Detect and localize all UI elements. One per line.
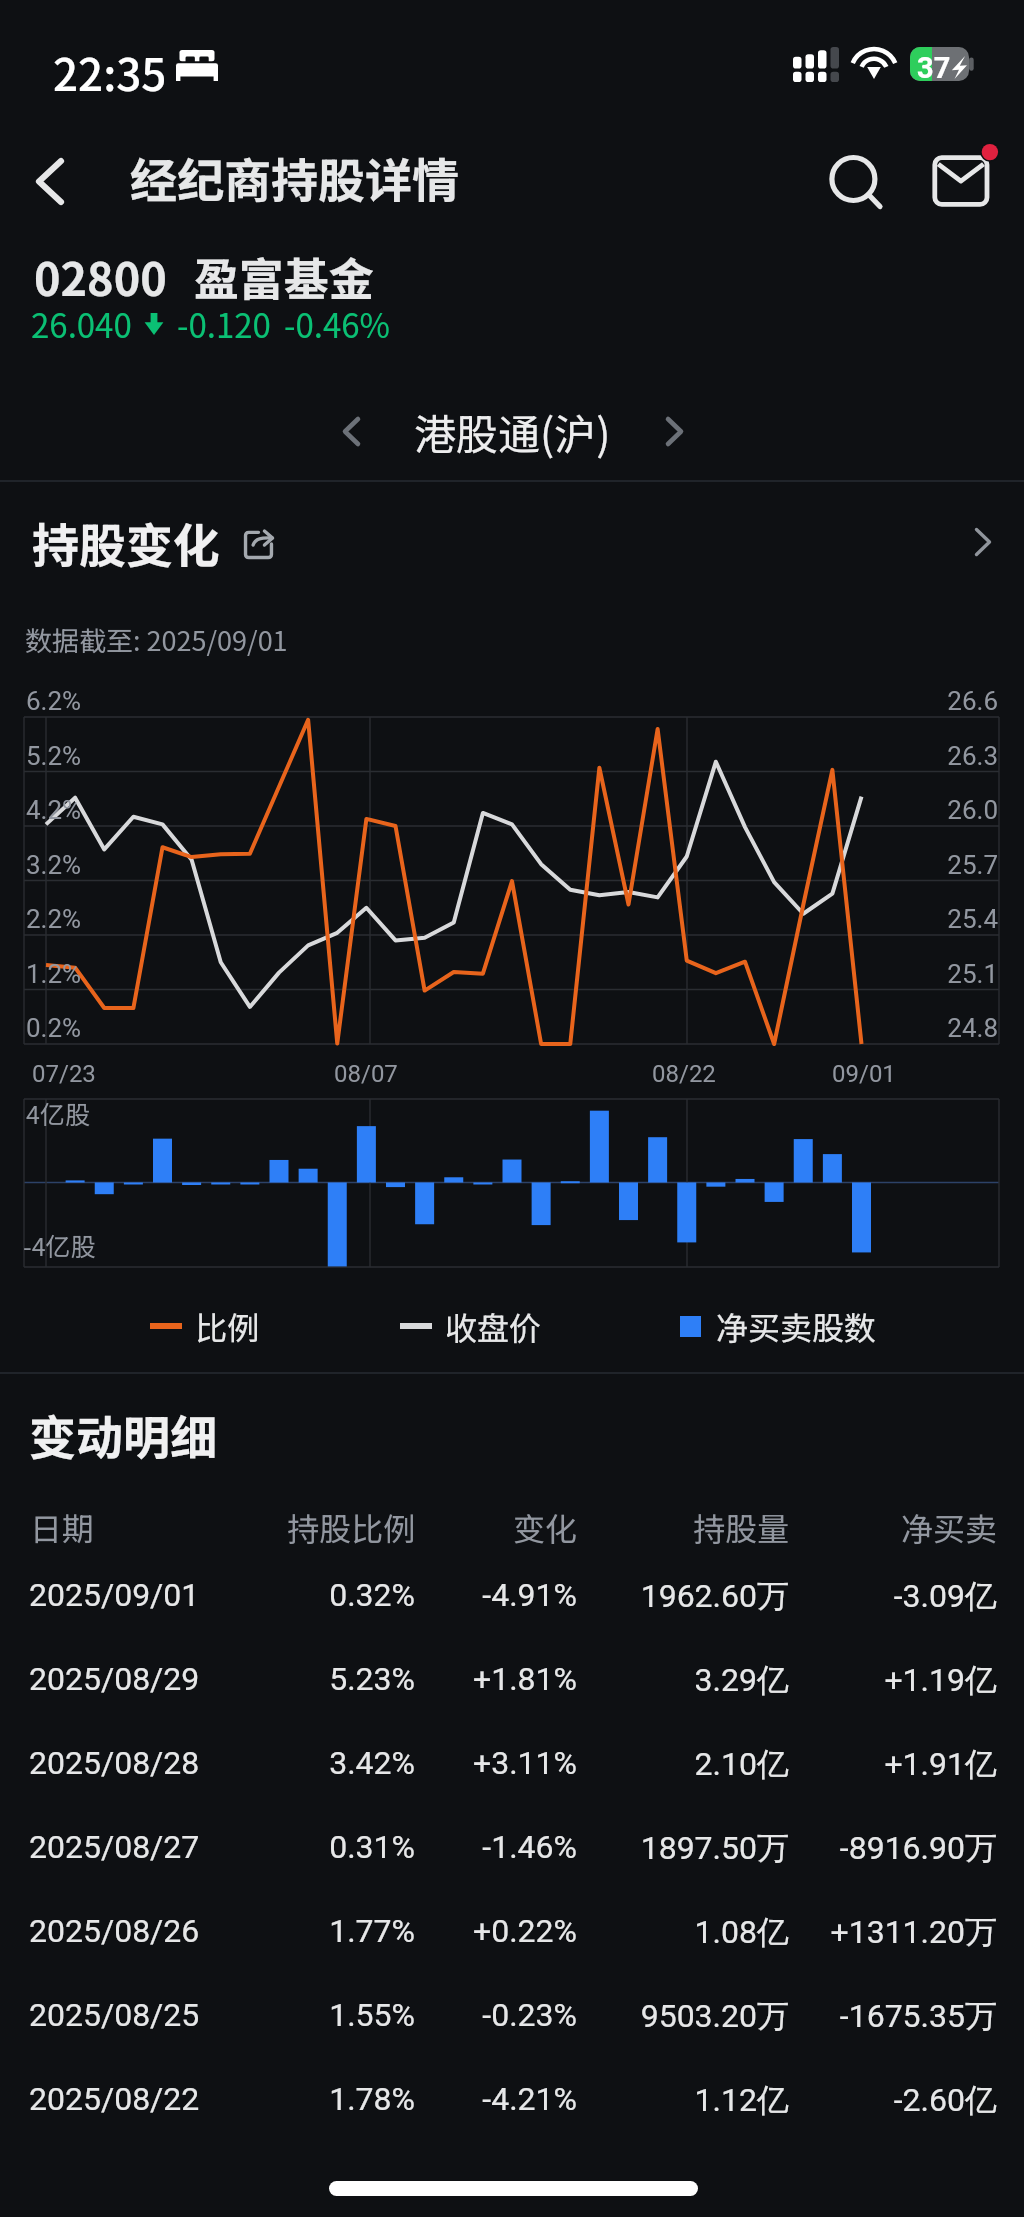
- staticText: -4.21%: [0, 2080, 577, 2118]
- staticText: 变动明细: [29, 1400, 217, 1468]
- staticText: 37: [917, 51, 951, 85]
- staticText: 净买卖股数: [716, 1303, 877, 1349]
- staticText: 2025/08/28: [29, 1744, 200, 1782]
- staticText: 2025/08/29: [29, 1660, 200, 1698]
- staticText: 2025/08/22: [29, 2080, 200, 2118]
- staticText: 2.10亿: [0, 1744, 789, 1784]
- staticText: 净买卖: [0, 1504, 997, 1550]
- staticText: -1675.35万: [0, 1996, 997, 2036]
- staticText: -1.46%: [0, 1828, 577, 1866]
- staticText: 持股量: [0, 1504, 789, 1550]
- staticText: 24.8: [880, 1013, 998, 1043]
- staticText: 07/23: [32, 1060, 96, 1088]
- button[interactable]: [0, 1890, 1024, 1974]
- button[interactable]: Previous market: [315, 395, 387, 467]
- button[interactable]: Back: [0, 131, 100, 231]
- staticText: 1.12亿: [0, 2080, 789, 2120]
- staticText: -2.60亿: [0, 2080, 997, 2120]
- staticText: 2.2%: [26, 904, 82, 934]
- button[interactable]: Search: [804, 130, 904, 230]
- staticText: 1.2%: [26, 959, 82, 989]
- staticText: 09/01: [832, 1060, 896, 1088]
- staticText: 经纪商持股详情: [130, 143, 459, 211]
- staticText: 5.23%: [0, 1660, 415, 1698]
- staticText: 3.2%: [26, 850, 82, 880]
- staticText: 6.2%: [26, 686, 82, 716]
- staticText: -4.91%: [0, 1576, 577, 1614]
- staticText: 0.2%: [26, 1013, 82, 1043]
- button[interactable]: [0, 1554, 1024, 1638]
- staticText: 盈富基金: [194, 244, 375, 309]
- staticText: 变化: [0, 1504, 577, 1550]
- staticText: -0.120: [177, 300, 271, 348]
- staticText: +1.81%: [0, 1660, 577, 1698]
- staticText: 4亿股: [26, 1095, 90, 1131]
- button[interactable]: Messages: [920, 130, 1020, 230]
- staticText: 收盘价: [445, 1303, 542, 1349]
- staticText: 持股比例: [0, 1504, 415, 1550]
- staticText: +3.11%: [0, 1744, 577, 1782]
- staticText: -4亿股: [23, 1227, 96, 1263]
- staticText: 08/07: [334, 1060, 398, 1088]
- staticText: +1311.20万: [0, 1912, 997, 1952]
- button[interactable]: [0, 1638, 1024, 1722]
- staticText: 1897.50万: [0, 1828, 789, 1868]
- staticText: 1.55%: [0, 1996, 415, 2034]
- button[interactable]: Next market: [638, 395, 710, 467]
- staticText: 08/22: [652, 1060, 716, 1088]
- staticText: 数据截至: 2025/09/01: [25, 620, 288, 659]
- button[interactable]: [0, 1722, 1024, 1806]
- button[interactable]: [0, 1806, 1024, 1890]
- staticText: 25.7: [880, 850, 998, 880]
- staticText: 日期: [30, 1504, 95, 1550]
- staticText: -8916.90万: [0, 1828, 997, 1868]
- staticText: 3.42%: [0, 1744, 415, 1782]
- button[interactable]: [0, 1974, 1024, 2058]
- staticText: -3.09亿: [0, 1576, 997, 1616]
- staticText: 02800: [34, 244, 167, 309]
- staticText: 26.040: [31, 300, 132, 348]
- staticText: 25.4: [880, 904, 998, 934]
- staticText: +1.91亿: [0, 1744, 997, 1784]
- staticText: 2025/08/27: [29, 1828, 200, 1866]
- button[interactable]: [0, 2058, 1024, 2142]
- staticText: 1.77%: [0, 1912, 415, 1950]
- staticText: -0.46%: [284, 300, 390, 348]
- staticText: 26.3: [880, 741, 998, 771]
- button[interactable]: 持股变化: [0, 496, 1024, 588]
- staticText: 1.08亿: [0, 1912, 789, 1952]
- staticText: 5.2%: [26, 741, 82, 771]
- staticText: 4.2%: [26, 795, 82, 825]
- staticText: 持股变化: [32, 508, 220, 576]
- staticText: 26.6: [880, 686, 998, 716]
- staticText: +1.19亿: [0, 1660, 997, 1700]
- staticText: 25.1: [880, 959, 998, 989]
- staticText: 1962.60万: [0, 1576, 789, 1616]
- staticText: -0.23%: [0, 1996, 577, 2034]
- staticText: 26.0: [880, 795, 998, 825]
- staticText: 港股通(沪): [414, 401, 611, 462]
- staticText: 9503.20万: [0, 1996, 789, 2036]
- staticText: 0.32%: [0, 1576, 415, 1614]
- staticText: 2025/08/26: [29, 1912, 200, 1950]
- staticText: 0.31%: [0, 1828, 415, 1866]
- staticText: 3.29亿: [0, 1660, 789, 1700]
- staticText: 2025/09/01: [29, 1576, 200, 1614]
- staticText: 比例: [195, 1303, 260, 1349]
- staticText: 22:35: [53, 40, 167, 104]
- staticText: 2025/08/25: [29, 1996, 200, 2034]
- staticText: +0.22%: [0, 1912, 577, 1950]
- staticText: 1.78%: [0, 2080, 415, 2118]
